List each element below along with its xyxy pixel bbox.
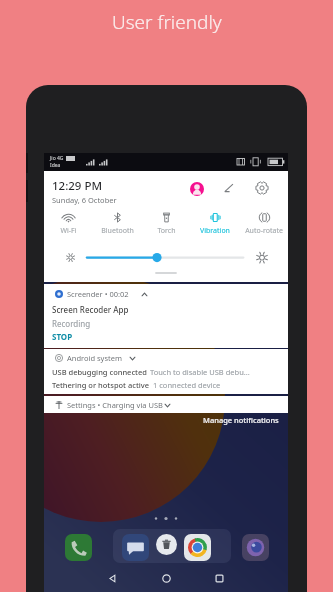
staticText: Screender • 00:02 bbox=[67, 289, 129, 299]
staticText: Recording bbox=[52, 318, 91, 329]
button[interactable]: Remove bbox=[156, 534, 177, 555]
button[interactable]: Screender • 00:02 bbox=[44, 284, 288, 348]
button[interactable]: Settings • Charging via USB bbox=[44, 396, 288, 413]
button[interactable]: Open app bbox=[122, 534, 149, 561]
staticText: Android system bbox=[67, 353, 122, 363]
button[interactable]: STOP bbox=[52, 331, 73, 342]
button[interactable]: Manage notifications bbox=[203, 415, 279, 425]
staticText: 1 connected device bbox=[153, 380, 221, 390]
button[interactable]: Recents bbox=[209, 568, 229, 588]
staticText: Bluetooth bbox=[101, 226, 134, 236]
staticText: Touch to disable USB debu... bbox=[150, 367, 250, 377]
staticText: Screen Recoder App bbox=[52, 304, 129, 315]
button[interactable]: Vibration bbox=[192, 207, 238, 237]
staticText: Tethering or hotspot active bbox=[52, 380, 150, 390]
staticText: USB debugging connected bbox=[52, 367, 147, 377]
button[interactable]: Open app bbox=[65, 534, 92, 561]
staticText: Auto-rotate bbox=[245, 226, 283, 236]
button[interactable]: Torch bbox=[143, 207, 189, 237]
button[interactable]: Home bbox=[156, 568, 176, 588]
staticText: Idea bbox=[50, 162, 61, 169]
staticText: User friendly bbox=[112, 9, 222, 35]
button[interactable]: Open app bbox=[184, 534, 211, 561]
button[interactable]: Edit bbox=[222, 181, 236, 195]
staticText: Settings • Charging via USB bbox=[67, 400, 163, 410]
staticText: Vibration bbox=[200, 226, 230, 236]
button[interactable]: Open app bbox=[242, 534, 269, 561]
button[interactable]: Android system bbox=[44, 349, 288, 394]
button[interactable]: Back bbox=[102, 568, 122, 588]
button[interactable]: Bluetooth bbox=[94, 207, 140, 237]
staticText: STOP bbox=[52, 331, 73, 342]
staticText: Jio 4G bbox=[50, 155, 64, 162]
staticText: 12:29 PM bbox=[52, 178, 103, 194]
staticText: Torch bbox=[157, 226, 176, 236]
staticText: Wi-Fi bbox=[60, 226, 77, 236]
button[interactable]: Auto-rotate bbox=[241, 207, 287, 237]
staticText: Sunday, 6 October bbox=[52, 195, 117, 205]
button[interactable]: Settings bbox=[255, 181, 269, 195]
button[interactable]: Wi-Fi bbox=[45, 207, 91, 237]
button[interactable]: User account bbox=[190, 182, 204, 196]
